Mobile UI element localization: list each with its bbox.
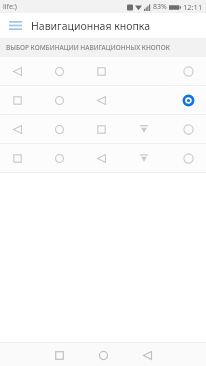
staticText: ВЫБОР КОМБИНАЦИИ НАВИГАЦИОННЫХ КНОПОК [6,43,170,52]
button[interactable]: Navigation button combination option [0,115,206,143]
button[interactable]: Navigation button combination option [0,57,206,85]
staticText: life:) [3,2,17,12]
button[interactable]: Back [136,344,158,366]
button[interactable]: Open navigation menu [0,13,31,38]
staticText: 83% [153,2,167,12]
button[interactable]: Home [92,344,114,366]
button[interactable]: Recent apps [48,344,70,366]
staticText: Навигационная кнопка [31,19,151,33]
button[interactable]: Navigation button combination option [0,144,206,172]
button[interactable]: Navigation button combination option [0,86,206,114]
staticText: 12:11 [183,2,203,12]
